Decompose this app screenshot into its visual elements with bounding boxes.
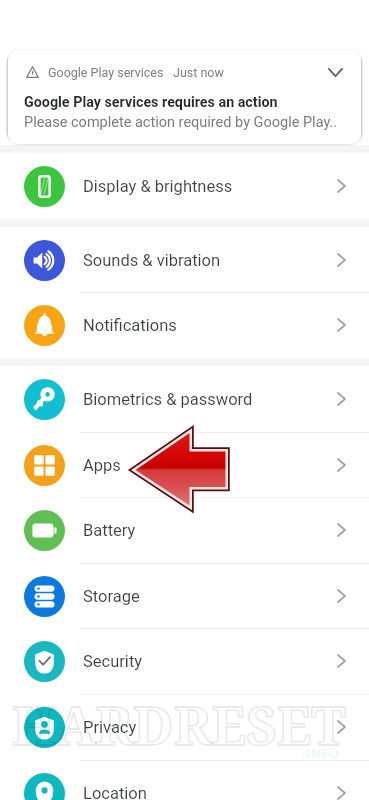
button[interactable]: Display & brightness: [0, 153, 369, 219]
staticText: Display & brightness: [83, 177, 233, 196]
staticText: Biometrics & password: [83, 390, 253, 409]
staticText: Battery: [83, 521, 136, 540]
staticText: Sounds & vibration: [83, 251, 221, 270]
button[interactable]: Biometrics & password: [0, 366, 369, 432]
button[interactable]: Security: [0, 628, 369, 694]
button[interactable]: Apps: [0, 432, 369, 498]
staticText: Google Play services requires an action: [24, 94, 278, 111]
staticText: Storage: [83, 587, 140, 606]
button[interactable]: Privacy: [0, 694, 369, 760]
button[interactable]: Location: [0, 760, 369, 800]
button[interactable]: Battery: [0, 497, 369, 563]
button[interactable]: Google Play services: [8, 50, 361, 144]
staticText: Apps: [83, 456, 121, 475]
button[interactable]: Notifications: [0, 292, 369, 358]
staticText: Security: [83, 652, 143, 671]
staticText: .INFO: [302, 744, 339, 762]
staticText: Please complete action required by Googl…: [24, 114, 338, 131]
button[interactable]: Sounds & vibration: [0, 227, 369, 293]
other: Pointer: [0, 0, 369, 800]
staticText: HARDRESET: [12, 688, 346, 760]
staticText: Notifications: [83, 316, 177, 335]
button[interactable]: Storage: [0, 563, 369, 629]
staticText: Location: [83, 784, 147, 800]
staticText: Just now: [173, 65, 224, 80]
staticText: Google Play services: [48, 65, 164, 80]
staticText: Privacy: [83, 718, 137, 737]
